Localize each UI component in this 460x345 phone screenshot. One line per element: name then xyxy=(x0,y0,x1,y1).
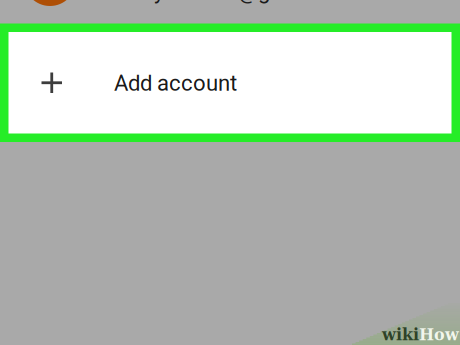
button[interactable]: emilythomas@gmail.com xyxy=(0,0,460,6)
staticText: emilythomas@gmail.com xyxy=(113,0,361,4)
staticText: How xyxy=(419,325,459,344)
staticText: Add account xyxy=(114,70,237,96)
staticText: wiki xyxy=(382,325,419,344)
button[interactable]: Add account xyxy=(0,23,460,142)
